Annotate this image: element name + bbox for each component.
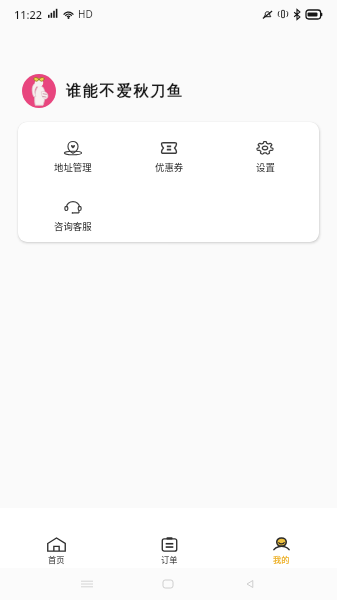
staticText: 首页 [48, 553, 65, 565]
staticText: 咨询客服 [54, 219, 92, 233]
button[interactable]: 我的 [225, 508, 337, 568]
staticText: 我的 [273, 553, 290, 565]
button[interactable]: Home [127, 568, 209, 600]
button[interactable]: 地址管理 [24, 141, 121, 174]
button[interactable]: 优惠券 [121, 141, 217, 174]
button[interactable]: 咨询客服 [24, 200, 121, 233]
staticText: 地址管理 [54, 160, 92, 174]
staticText: 11:22 [14, 7, 43, 22]
button[interactable]: Recents [46, 568, 127, 600]
staticText: 订单 [161, 553, 178, 565]
staticText: 优惠券 [155, 160, 184, 174]
staticText: 谁能不爱秋刀鱼 [66, 82, 184, 101]
button[interactable]: 首页 [0, 508, 113, 568]
button[interactable]: 订单 [113, 508, 225, 568]
button[interactable]: Profile avatar [22, 74, 56, 108]
staticText: HD [78, 7, 93, 21]
button[interactable]: Back [209, 568, 291, 600]
button[interactable]: 设置 [217, 141, 313, 174]
staticText: 设置 [256, 160, 275, 174]
